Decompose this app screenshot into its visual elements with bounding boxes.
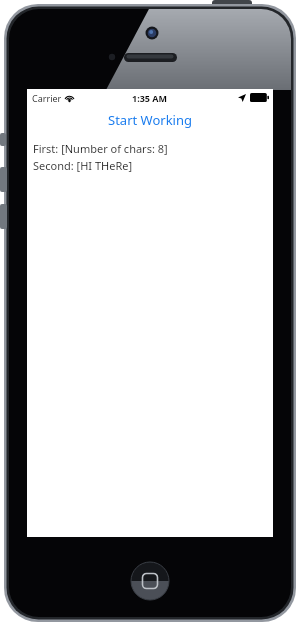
other: Battery	[250, 93, 269, 102]
staticText: First: [Number of chars: 8]	[33, 141, 168, 156]
staticText: Second: [HI THeRe]	[33, 158, 133, 173]
staticText: Carrier	[32, 92, 62, 104]
other: Location	[238, 94, 246, 102]
other: Wi-Fi	[65, 94, 74, 103]
staticText: Start Working	[108, 111, 192, 129]
staticText: 1:35 AM	[132, 92, 168, 104]
button[interactable]: Start Working	[27, 110, 273, 130]
